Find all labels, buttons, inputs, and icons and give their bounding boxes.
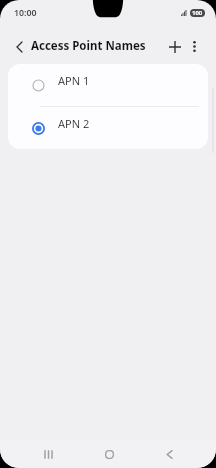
staticText: APN 1	[58, 73, 90, 88]
button[interactable]: More options	[183, 35, 206, 58]
button[interactable]: Recent apps	[36, 442, 60, 466]
staticText: Access Point Names	[31, 38, 146, 54]
button[interactable]: APN 1	[8, 64, 208, 106]
button[interactable]: Home	[97, 442, 121, 466]
button[interactable]: Add APN	[163, 35, 186, 58]
button[interactable]: APN 2	[8, 107, 208, 149]
staticText: APN 2	[58, 116, 90, 131]
staticText: 100	[192, 9, 203, 17]
staticText: 10:00	[14, 7, 37, 19]
button[interactable]: Navigate up	[8, 35, 31, 58]
button[interactable]: Back	[157, 442, 181, 466]
